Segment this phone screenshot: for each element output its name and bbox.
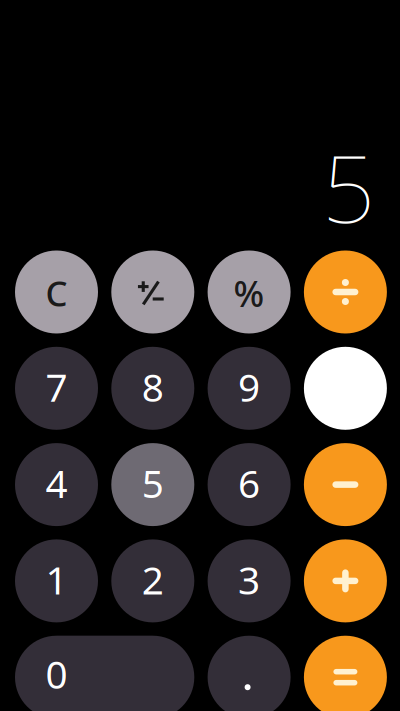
staticText: C [45, 270, 67, 316]
staticText: 3 [238, 554, 260, 605]
button[interactable]: 8 [111, 347, 194, 430]
staticText: 1 [45, 554, 67, 605]
button[interactable]: 1 [15, 539, 98, 622]
button[interactable]: 6 [208, 443, 291, 526]
button[interactable]: Equals [304, 636, 387, 711]
button[interactable]: 4 [15, 443, 98, 526]
button[interactable]: 2 [111, 539, 194, 622]
staticText: 7 [45, 361, 67, 412]
button[interactable]: 3 [208, 539, 291, 622]
button[interactable]: Minus [304, 443, 387, 526]
button[interactable]: 7 [15, 347, 98, 430]
button[interactable]: 0 [15, 636, 194, 711]
staticText: 0 [45, 648, 67, 699]
button[interactable]: Divide [304, 250, 387, 333]
staticText: 2 [142, 554, 164, 605]
staticText: 6 [238, 457, 260, 509]
staticText: 5 [322, 124, 375, 248]
staticText: 9 [238, 361, 260, 412]
staticText: 4 [45, 457, 67, 509]
button[interactable]: Multiply [304, 347, 387, 430]
button[interactable]: C [15, 250, 98, 333]
button[interactable]: 9 [208, 347, 291, 430]
staticText: 8 [142, 361, 164, 412]
button[interactable]: Decimal point [208, 636, 291, 711]
staticText: % [234, 269, 265, 317]
staticText: 5 [142, 457, 164, 509]
button[interactable]: Plus minus [111, 250, 194, 333]
button[interactable]: % [208, 250, 291, 333]
button[interactable]: 5 [111, 443, 194, 526]
button[interactable]: Plus [304, 539, 387, 622]
